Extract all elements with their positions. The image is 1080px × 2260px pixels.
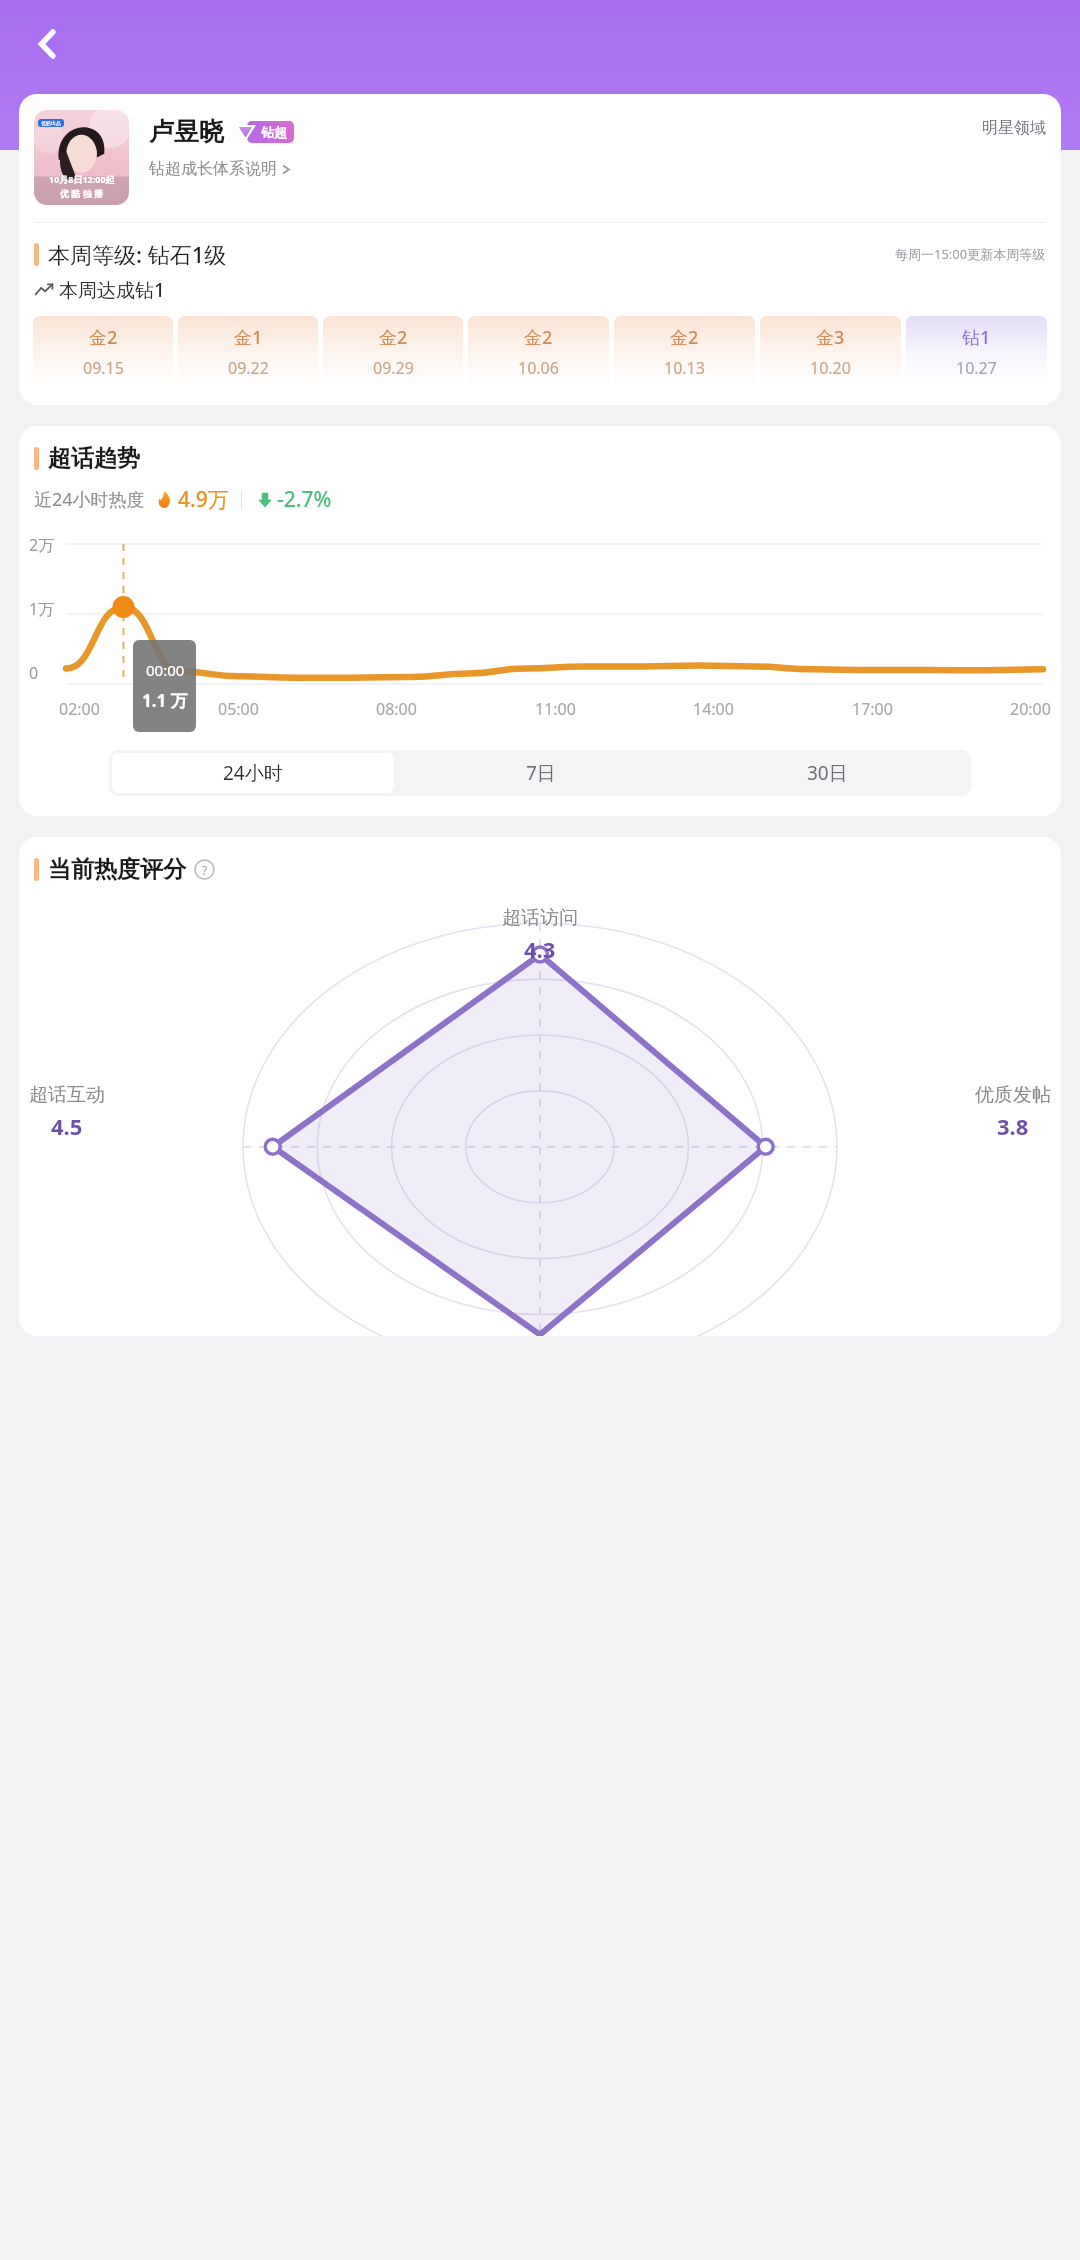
staticText: 当前热度评分 — [48, 855, 186, 884]
staticText: 09.22 — [228, 357, 269, 379]
button[interactable]: 金2 — [323, 316, 463, 388]
staticText: 超话互动 — [29, 1083, 105, 1107]
staticText: 本周等级: 钻石1级 — [48, 239, 227, 269]
staticText: 09.29 — [373, 357, 414, 379]
staticText: 09.15 — [83, 357, 124, 379]
button[interactable]: 金1 — [178, 316, 318, 388]
staticText: 4.9万 — [178, 485, 229, 514]
button[interactable]: 当前热度评分 — [34, 855, 215, 884]
staticText: 17:00 — [852, 698, 893, 720]
staticText: 钻超成长体系说明 — [149, 159, 277, 179]
staticText: 2万 — [29, 534, 55, 556]
staticText: 0 — [29, 662, 39, 684]
staticText: ? — [202, 862, 208, 878]
staticText: -2.7% — [277, 485, 332, 514]
staticText: 24小时 — [223, 760, 283, 786]
staticText: 11:00 — [535, 698, 576, 720]
staticText: 超话访问 — [502, 906, 578, 930]
staticText: 10.06 — [518, 357, 559, 379]
staticText: 优 酷 独 播 — [60, 187, 104, 199]
staticText: 10.20 — [810, 357, 851, 379]
staticText: 金2 — [670, 325, 699, 350]
staticText: 优质发帖 — [975, 1083, 1051, 1107]
staticText: 1万 — [29, 598, 55, 620]
staticText: 02:00 — [59, 698, 100, 720]
staticText: 00:00 — [146, 660, 185, 680]
staticText: 钻1 — [962, 325, 991, 350]
staticText: 7日 — [526, 760, 556, 786]
staticText: 每周一15:00更新本周等级 — [895, 245, 1046, 263]
button[interactable]: 7日 — [400, 753, 681, 793]
button[interactable]: 钻超 — [233, 119, 294, 144]
staticText: 30日 — [807, 760, 848, 786]
button[interactable]: 钻超成长体系说明 — [149, 159, 292, 179]
staticText: 08:00 — [376, 698, 417, 720]
button[interactable]: 金3 — [760, 316, 901, 388]
button[interactable]: 30日 — [687, 753, 968, 793]
staticText: 金1 — [234, 325, 263, 350]
staticText: 14:00 — [693, 698, 734, 720]
staticText: 10.27 — [956, 357, 997, 379]
staticText: 明星领域 — [982, 118, 1046, 138]
staticText: 4.5 — [51, 1111, 83, 1141]
other: Help — [194, 859, 215, 880]
button[interactable]: 金2 — [33, 316, 173, 388]
staticText: 优酷出品 — [41, 120, 61, 126]
button[interactable]: 24小时 — [112, 753, 394, 793]
button[interactable]: 优酷出品 — [34, 110, 129, 205]
staticText: 10月8日12:00起 — [49, 173, 115, 185]
button[interactable]: 钻1 — [906, 316, 1047, 388]
staticText: 卢昱晓 — [149, 116, 224, 147]
button[interactable]: 金2 — [614, 316, 755, 388]
staticText: 4.3 — [524, 934, 556, 964]
staticText: 金2 — [379, 325, 408, 350]
button[interactable]: 金2 — [468, 316, 609, 388]
staticText: 10.13 — [664, 357, 705, 379]
staticText: 1.1 万 — [142, 689, 188, 712]
staticText: 钻超 — [261, 124, 287, 140]
staticText: 20:00 — [1010, 698, 1051, 720]
staticText: 超话趋势 — [48, 444, 140, 473]
staticText: 近24小时热度 — [34, 487, 145, 512]
staticText: 金2 — [89, 325, 118, 350]
button[interactable]: Back — [18, 18, 70, 70]
staticText: 3.8 — [997, 1111, 1029, 1141]
staticText: 05:00 — [218, 698, 259, 720]
staticText: 金3 — [816, 325, 845, 350]
staticText: 金2 — [524, 325, 553, 350]
staticText: 本周达成钻1 — [59, 277, 165, 303]
